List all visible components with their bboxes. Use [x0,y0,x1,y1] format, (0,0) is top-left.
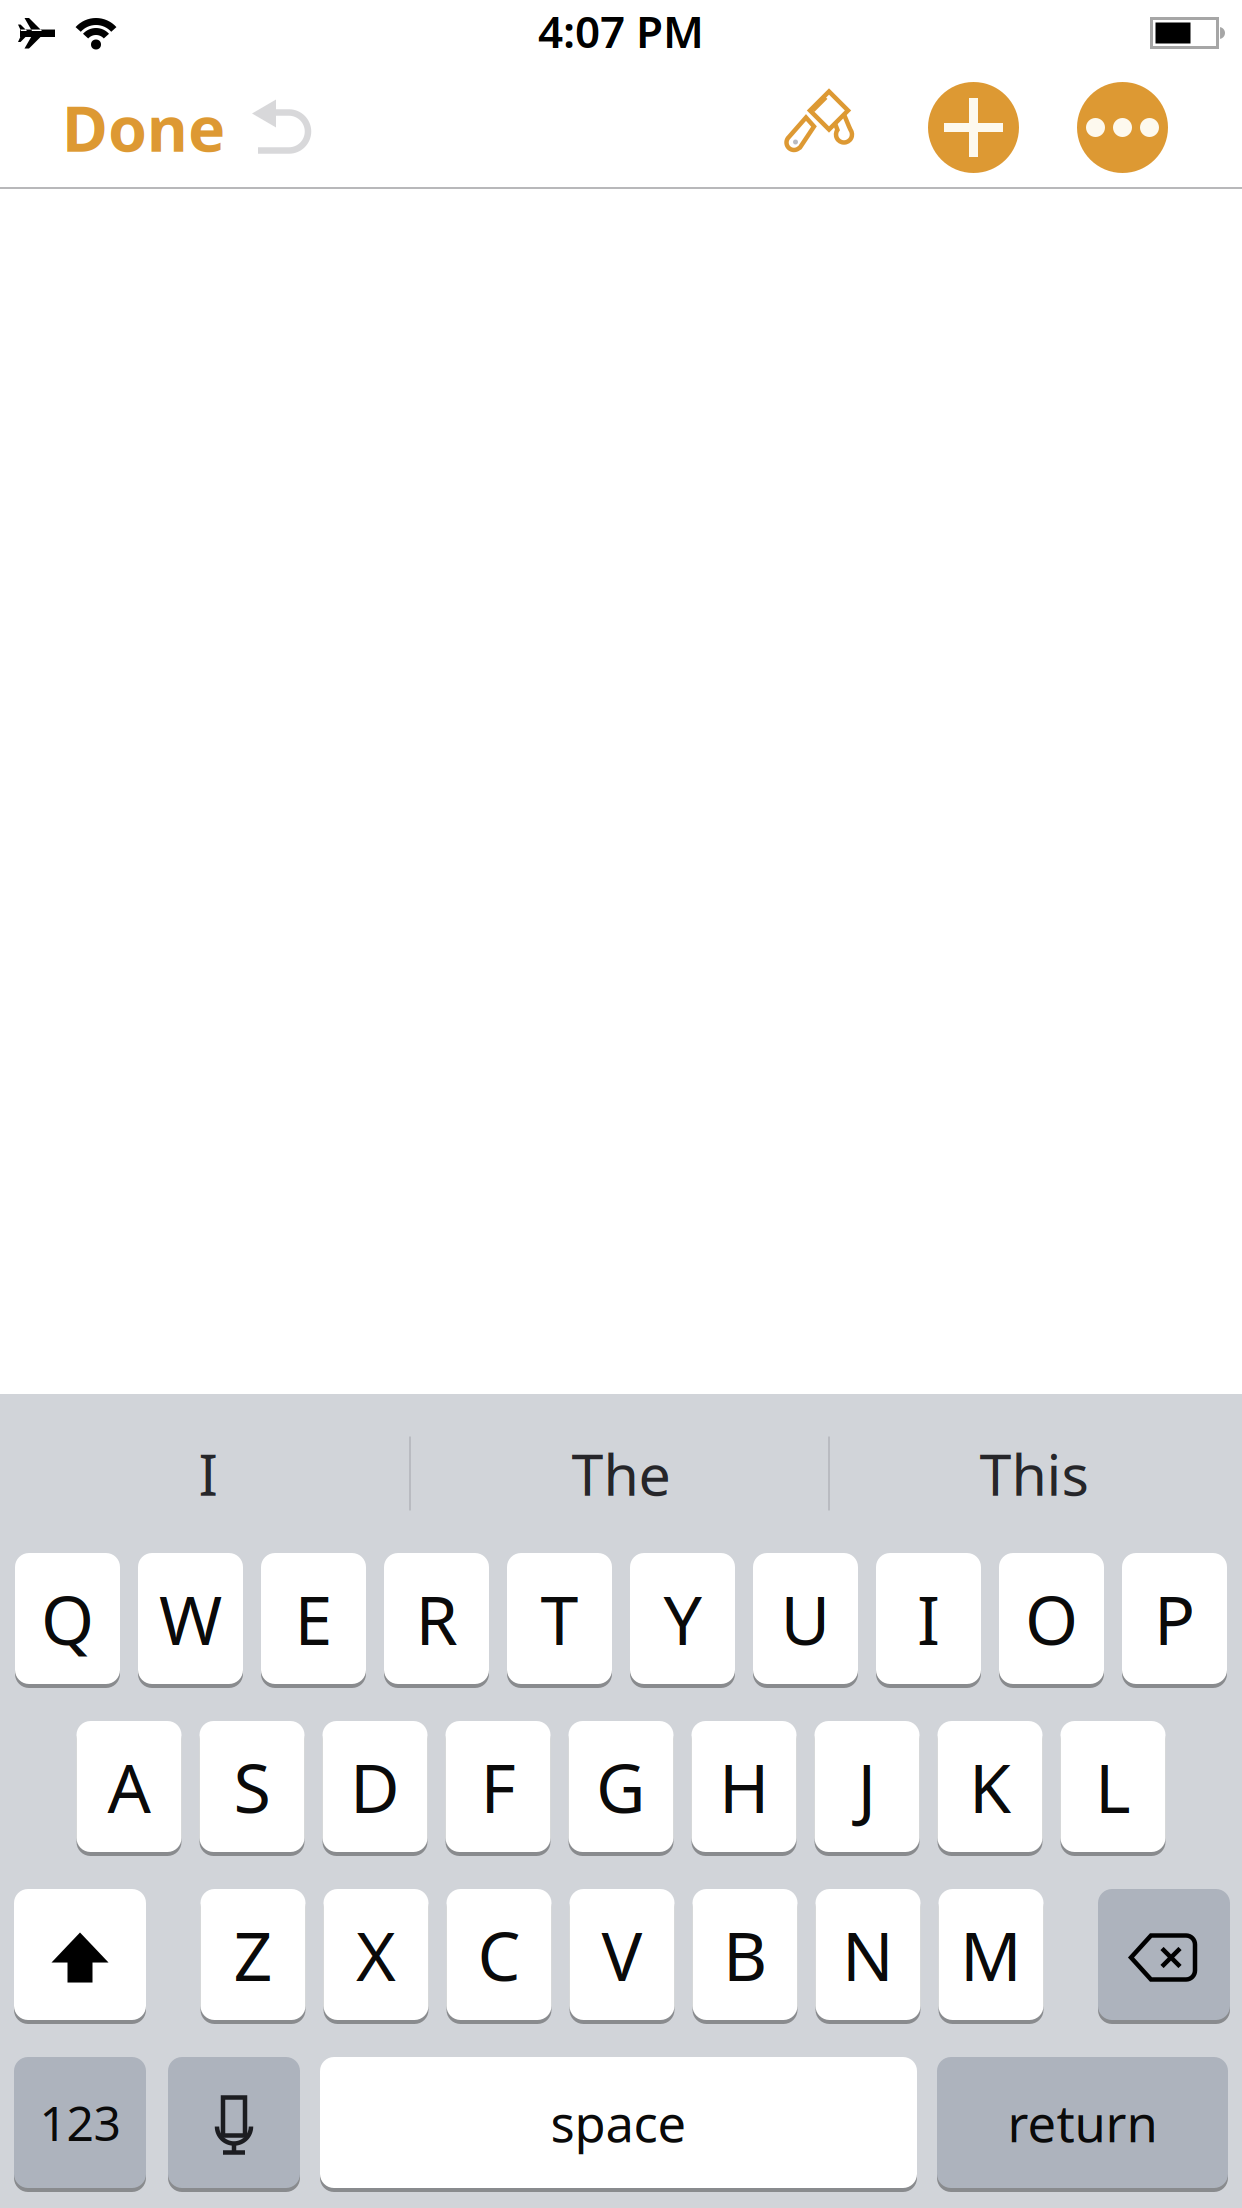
staticText: space [550,2089,686,2156]
staticText: I [198,1435,217,1511]
staticText: 4:07 PM [538,2,704,60]
button[interactable]: N [815,1889,920,2024]
staticText: W [159,1573,222,1664]
button[interactable]: Y [630,1553,735,1688]
button[interactable]: H [691,1721,796,1856]
staticText: S [233,1741,270,1832]
staticText: This [979,1435,1088,1511]
button[interactable]: K [937,1721,1042,1856]
staticText: M [960,1909,1022,2000]
staticText: T [540,1573,578,1664]
button[interactable]: I [876,1553,981,1688]
staticText: B [723,1909,767,2000]
button[interactable]: I [2,1417,414,1529]
button[interactable]: 123 [14,2057,146,2192]
staticText: F [480,1741,515,1832]
staticText: Done [62,86,225,169]
button[interactable]: Dictate [168,2057,300,2192]
staticText: V [601,1909,642,2000]
button[interactable]: Markup [782,85,868,169]
button[interactable]: V [569,1889,674,2024]
staticText: C [477,1909,520,2000]
staticText: The [571,1435,670,1511]
button[interactable]: More [1077,82,1168,173]
button[interactable]: T [507,1553,612,1688]
button[interactable]: F [445,1721,550,1856]
button[interactable]: P [1122,1553,1227,1688]
staticText: L [1095,1741,1131,1832]
staticText: X [356,1909,396,2000]
button[interactable]: W [138,1553,243,1688]
button[interactable]: space [320,2057,917,2192]
button[interactable]: S [199,1721,304,1856]
button[interactable]: D [322,1721,427,1856]
staticText: U [780,1573,830,1664]
staticText: 123 [39,2091,120,2154]
staticText: R [415,1573,457,1664]
staticText: P [1154,1573,1195,1664]
staticText: N [842,1909,894,2000]
button[interactable]: E [261,1553,366,1688]
button[interactable]: The [414,1417,828,1529]
button[interactable]: Done [62,86,225,169]
staticText: G [596,1741,646,1832]
button[interactable]: C [446,1889,551,2024]
staticText: K [969,1741,1011,1832]
button[interactable]: G [568,1721,673,1856]
button[interactable]: return [937,2057,1228,2192]
button[interactable]: O [999,1553,1104,1688]
button[interactable]: L [1060,1721,1165,1856]
button[interactable]: M [938,1889,1043,2024]
staticText: Z [233,1909,272,2000]
button[interactable]: B [692,1889,797,2024]
button[interactable]: Add [928,82,1019,173]
staticText: J [857,1741,876,1832]
staticText: A [107,1741,150,1832]
button[interactable]: X [323,1889,428,2024]
button[interactable]: Undo [252,99,310,155]
staticText: E [294,1573,332,1664]
staticText: Q [41,1573,94,1664]
staticText: I [917,1573,940,1664]
button[interactable]: This [828,1417,1240,1529]
staticText: H [719,1741,769,1832]
button[interactable]: Shift [14,1889,146,2024]
button[interactable]: Delete [1098,1889,1230,2024]
button[interactable]: R [384,1553,489,1688]
staticText: O [1025,1573,1078,1664]
button[interactable]: U [753,1553,858,1688]
staticText: return [1007,2089,1157,2156]
button[interactable]: J [814,1721,919,1856]
button[interactable]: Z [200,1889,305,2024]
button[interactable]: A [76,1721,181,1856]
staticText: Y [663,1573,701,1664]
staticText: D [350,1741,400,1832]
button[interactable]: Q [15,1553,120,1688]
